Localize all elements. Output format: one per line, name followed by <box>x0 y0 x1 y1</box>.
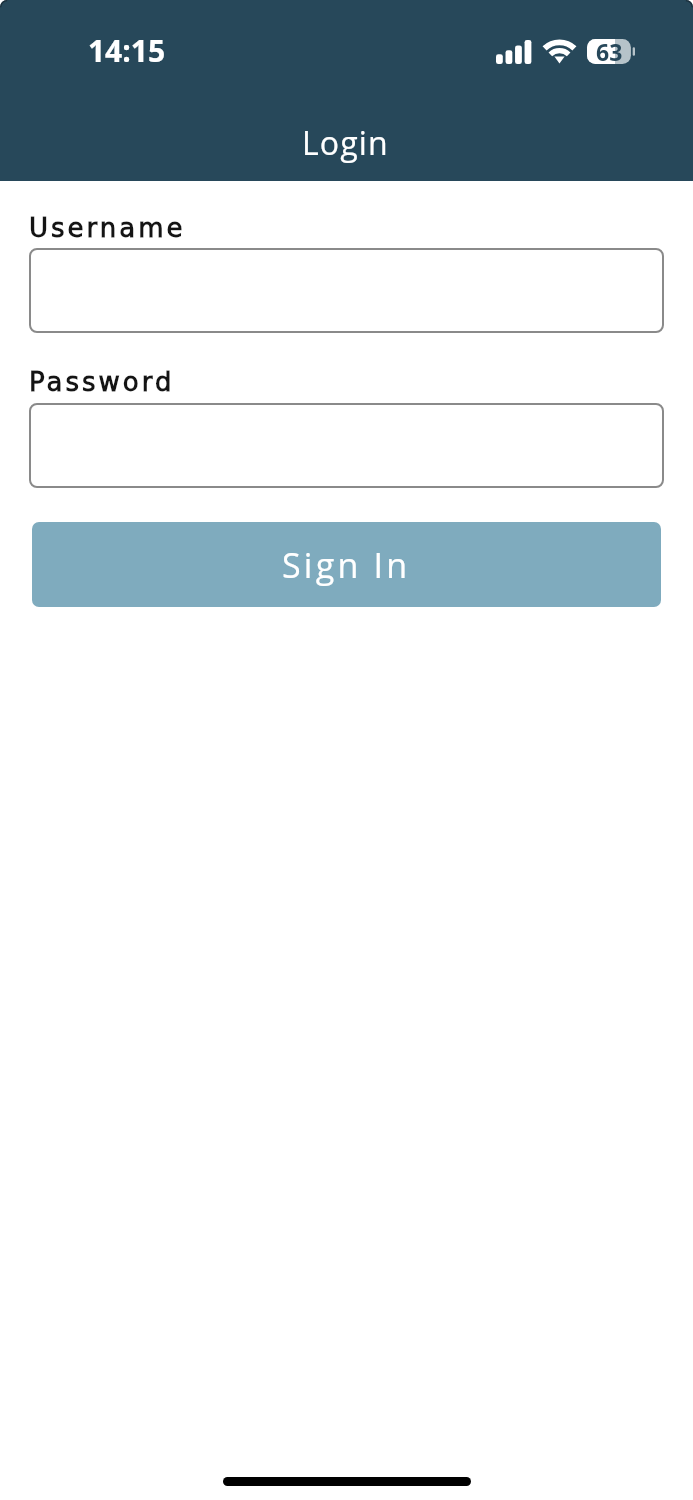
staticText: Login <box>302 121 389 165</box>
staticText: Sign In <box>282 542 411 588</box>
other: Cellular signal <box>496 39 532 64</box>
staticText: Username <box>29 213 186 243</box>
staticText: Password <box>29 367 175 397</box>
button[interactable]: Text field <box>29 248 664 333</box>
staticText: 63 <box>596 36 623 61</box>
other: Wi-Fi <box>544 39 575 64</box>
button[interactable]: Sign In <box>32 522 661 607</box>
button[interactable]: Text field <box>29 403 664 488</box>
staticText: 14:15 <box>88 30 166 71</box>
other: Battery 63 percent <box>587 39 635 64</box>
